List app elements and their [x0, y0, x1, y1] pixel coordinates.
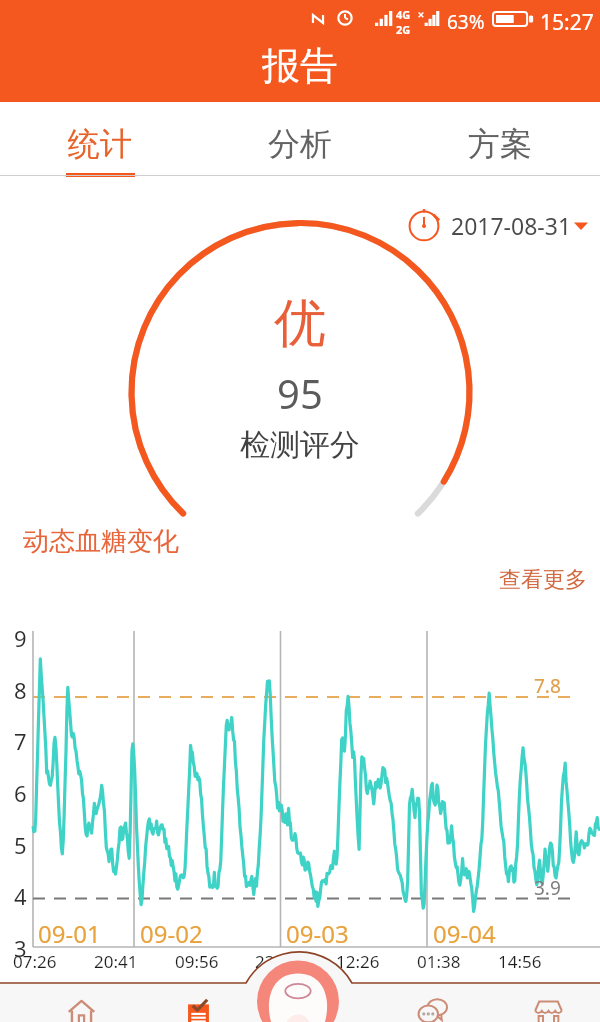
staticText: 统计	[68, 124, 132, 164]
staticText: 14:56	[498, 950, 542, 973]
staticText: 3	[14, 933, 27, 963]
staticText: 8	[14, 675, 27, 705]
staticText: 2G	[396, 22, 411, 37]
staticText: 07:26	[13, 950, 57, 973]
staticText: 查看更多	[499, 566, 587, 594]
staticText: 09-03	[286, 917, 349, 950]
button[interactable]: Report	[169, 979, 227, 1022]
staticText: 7	[14, 726, 27, 756]
button[interactable]: 方案	[400, 102, 600, 176]
staticText: 15:27	[540, 8, 594, 37]
staticText: 09-01	[38, 917, 101, 950]
staticText: 9	[14, 623, 27, 653]
staticText: 63%	[447, 9, 485, 35]
staticText: 优	[274, 291, 326, 357]
staticText: 分析	[268, 124, 332, 164]
button[interactable]: 统计	[0, 102, 200, 176]
button[interactable]: Home	[52, 979, 110, 1022]
staticText: 20:41	[94, 950, 138, 973]
staticText: 4G	[396, 7, 411, 22]
staticText: 6	[14, 778, 27, 808]
staticText: 3.9	[534, 875, 561, 901]
staticText: 动态血糖变化	[23, 525, 179, 558]
button[interactable]: 分析	[200, 102, 400, 176]
button[interactable]: Device	[257, 963, 339, 1022]
staticText: 01:38	[417, 950, 461, 973]
staticText: 7.8	[534, 673, 561, 699]
staticText: 检测评分	[240, 426, 360, 464]
button[interactable]: Store	[519, 979, 577, 1022]
button[interactable]: Messages	[403, 979, 461, 1022]
staticText: 12:26	[336, 950, 380, 973]
staticText: 09-02	[140, 917, 203, 950]
staticText: 09-04	[433, 917, 496, 950]
staticText: 5	[14, 830, 27, 860]
staticText: 95	[277, 366, 323, 420]
staticText: 报告	[262, 42, 338, 90]
button[interactable]: 查看更多	[499, 566, 587, 594]
staticText: 09:56	[175, 950, 219, 973]
staticText: 方案	[468, 124, 532, 164]
staticText: 23:11	[255, 950, 299, 973]
staticText: 4	[14, 881, 27, 911]
button[interactable]: 2017-08-31	[408, 209, 588, 241]
staticText: 2017-08-31	[451, 210, 572, 241]
